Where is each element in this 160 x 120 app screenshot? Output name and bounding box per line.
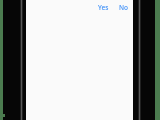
button[interactable]: No	[117, 2, 131, 13]
staticText: Yes	[98, 3, 109, 12]
staticText: No	[119, 3, 129, 12]
button[interactable]: Yes	[96, 2, 111, 13]
